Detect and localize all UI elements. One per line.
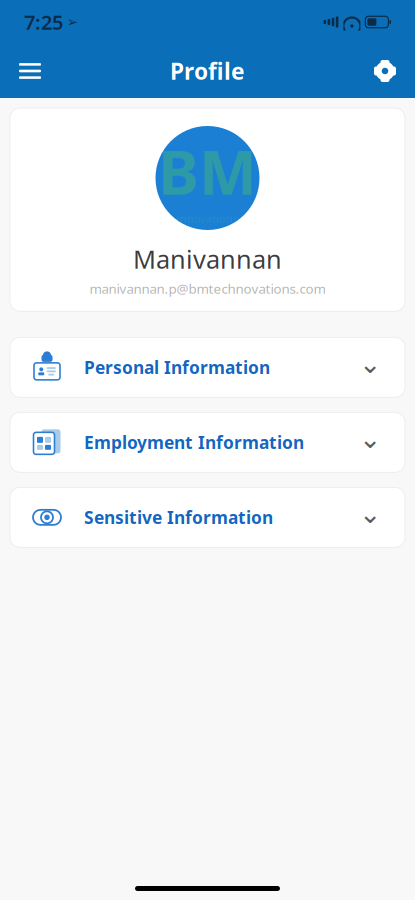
staticText: ⌄ — [359, 424, 381, 454]
staticText: Sensitive Information — [84, 506, 273, 529]
staticText: Personal Information — [84, 356, 270, 379]
button[interactable]: Personal Information — [10, 337, 405, 397]
staticText: ⌄ — [359, 349, 381, 379]
staticText: manivannan.p@bmtechnovations.com — [89, 280, 325, 297]
staticText: Profile — [170, 56, 245, 86]
staticText: 7:25 — [24, 9, 63, 35]
button[interactable]: Sensitive Information — [10, 487, 405, 547]
staticText: ⌄ — [359, 499, 381, 529]
staticText: BM — [158, 130, 257, 212]
button[interactable]: Settings — [363, 49, 407, 93]
staticText: Employment Information — [84, 431, 304, 454]
staticText: ➢ — [67, 14, 78, 29]
button[interactable]: Menu — [8, 49, 52, 93]
staticText: Manivannan — [133, 242, 282, 276]
button[interactable]: Employment Information — [10, 412, 405, 472]
staticText: innovations — [177, 212, 238, 226]
